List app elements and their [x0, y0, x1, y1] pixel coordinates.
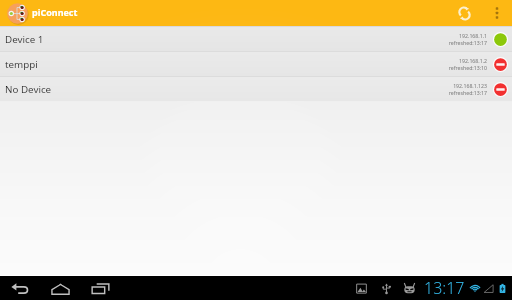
staticText: No Device: [5, 83, 52, 96]
staticText: refreshed:13:17: [448, 89, 487, 96]
staticText: piConnect: [32, 6, 78, 18]
staticText: refreshed:13:10: [448, 64, 487, 71]
staticText: 192.168.1.123: [453, 82, 487, 89]
staticText: refreshed:13:17: [448, 39, 487, 46]
button[interactable]: temppi: [0, 52, 512, 76]
staticText: 192.168.1.2: [459, 57, 487, 64]
staticText: Device 1: [5, 33, 44, 46]
staticText: temppi: [5, 58, 38, 71]
staticText: 192.168.1.1: [459, 32, 487, 39]
button[interactable]: Back: [6, 276, 34, 300]
button[interactable]: Refresh: [453, 2, 475, 24]
button[interactable]: Recent apps: [86, 276, 114, 300]
button[interactable]: Device 1: [0, 27, 512, 51]
button[interactable]: No Device: [0, 77, 512, 101]
staticText: 13:17: [424, 277, 465, 299]
button[interactable]: More options: [488, 4, 506, 22]
button[interactable]: Home: [46, 276, 74, 300]
